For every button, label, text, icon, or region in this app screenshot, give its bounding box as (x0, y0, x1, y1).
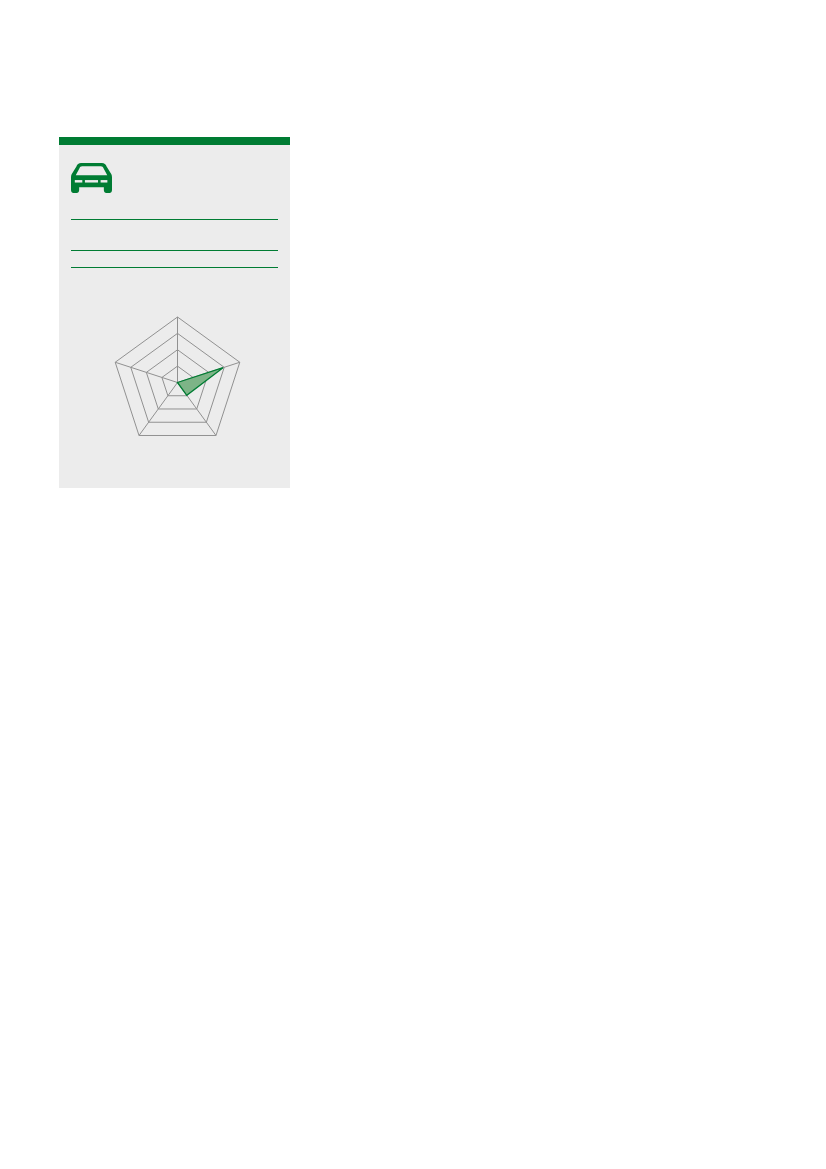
button[interactable]: Vehicle score chart (112, 317, 243, 448)
button[interactable]: Vehicle (71, 163, 112, 193)
button[interactable]: Summary row (59, 219, 290, 250)
button[interactable]: Summary row (59, 250, 290, 267)
button[interactable]: Summary row (59, 267, 290, 268)
button[interactable]: Vehicle (59, 137, 290, 488)
